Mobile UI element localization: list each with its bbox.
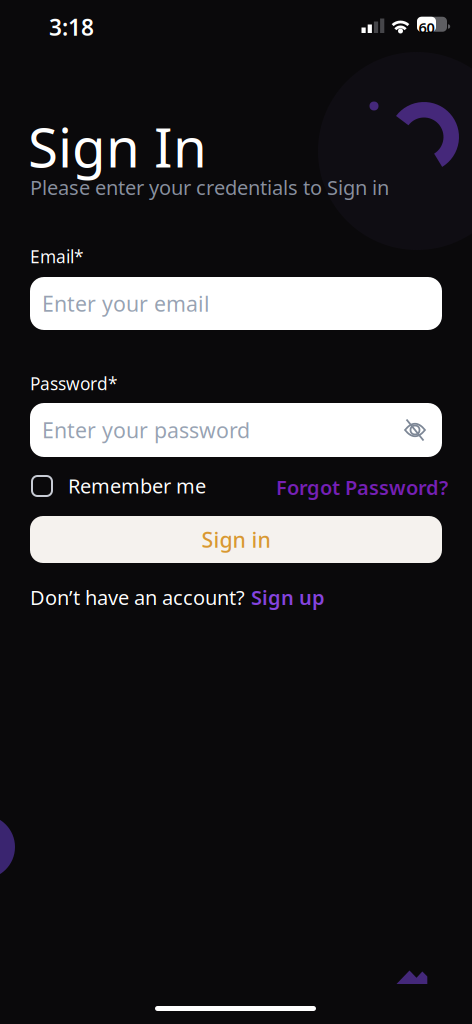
staticText: Please enter your credentials to Sign in [30, 174, 389, 201]
staticText: Sign In [28, 110, 207, 183]
staticText: Sign up [251, 584, 325, 611]
staticText: Forgot Password? [276, 474, 448, 501]
staticText: Enter your email [42, 289, 210, 318]
staticText: 3:18 [49, 12, 94, 42]
staticText: Don’t have an account? [30, 584, 245, 611]
staticText: Password* [30, 372, 118, 395]
staticText: Enter your password [42, 416, 250, 444]
staticText: Sign in [201, 525, 270, 554]
staticText: 60 [418, 18, 434, 37]
staticText: Remember me [68, 472, 206, 499]
staticText: Email* [30, 245, 84, 268]
